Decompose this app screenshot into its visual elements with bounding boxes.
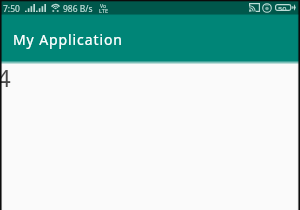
button[interactable]: My Application: [0, 15, 300, 62]
staticText: 7:50: [3, 3, 20, 15]
staticText: 50: [278, 4, 287, 11]
staticText: 4: [0, 61, 11, 94]
staticText: 986 B/s: [63, 3, 93, 15]
staticText: Vo: [100, 2, 107, 9]
staticText: My Application: [13, 30, 123, 49]
other: Alarm set: [262, 3, 272, 13]
other: Cast screen: [249, 3, 260, 12]
staticText: LTE: [99, 7, 109, 15]
other: Battery 50 percent, charging: [275, 4, 296, 11]
